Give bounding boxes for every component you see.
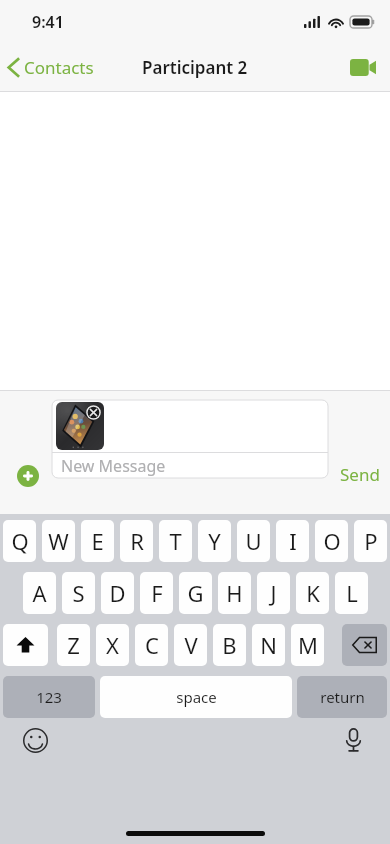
staticText: T [169,526,182,556]
button[interactable]: V [174,624,207,666]
button[interactable]: Backspace [342,624,387,666]
button[interactable]: E [81,520,114,562]
staticText: L [346,578,358,608]
button[interactable]: X [96,624,129,666]
staticText: D [109,578,126,608]
button[interactable]: A [23,572,56,614]
button[interactable]: Remove attachment [86,405,101,420]
button[interactable]: N [252,624,285,666]
staticText: space [176,687,217,707]
staticText: C [145,630,159,660]
button[interactable]: J [257,572,290,614]
button[interactable]: S [62,572,95,614]
staticText: Y [208,526,221,556]
button[interactable]: P [354,520,387,562]
staticText: M [298,630,318,660]
button[interactable]: B [213,624,246,666]
button[interactable]: Y [198,520,231,562]
staticText: R [130,526,144,556]
button[interactable]: R [120,520,153,562]
staticText: New Message [61,455,166,477]
staticText: Participant 2 [142,56,248,79]
staticText: F [151,578,163,608]
button[interactable]: D [101,572,134,614]
button[interactable]: W [42,520,75,562]
button[interactable]: M [291,624,324,666]
staticText: B [222,630,237,660]
button[interactable]: space [100,676,292,718]
button[interactable]: Send [330,457,390,492]
staticText: 9:41 [32,11,64,33]
staticText: O [323,526,341,556]
staticText: N [260,630,277,660]
staticText: H [226,578,243,608]
button[interactable]: G [179,572,212,614]
button[interactable]: U [237,520,270,562]
staticText: S [72,578,85,608]
staticText: U [245,526,262,556]
button[interactable]: Add attachment [17,465,39,487]
staticText: G [187,578,204,608]
staticText: P [364,526,378,556]
button[interactable]: L [335,572,368,614]
button[interactable]: C [135,624,168,666]
button[interactable]: Q [3,520,36,562]
staticText: J [270,578,277,608]
button[interactable]: H [218,572,251,614]
staticText: E [91,526,104,556]
staticText: A [32,578,47,608]
staticText: X [106,630,119,660]
staticText: V [184,630,198,660]
staticText: Contacts [24,56,94,79]
button[interactable]: O [315,520,348,562]
button[interactable]: Z [57,624,90,666]
button[interactable]: Contacts [0,50,102,85]
staticText: 123 [36,687,62,707]
button[interactable]: I [276,520,309,562]
button[interactable]: Shift [3,624,48,666]
button[interactable]: Video call [336,49,390,86]
button[interactable]: return [297,676,387,718]
button[interactable]: 123 [3,676,95,718]
button[interactable]: K [296,572,329,614]
staticText: W [48,526,69,556]
staticText: I [289,526,297,556]
button[interactable]: Dictation [338,725,368,755]
staticText: Send [340,463,380,486]
staticText: K [306,578,320,608]
button[interactable]: Emoji [20,725,50,755]
button[interactable]: T [159,520,192,562]
staticText: return [320,687,365,707]
staticText: Q [11,526,29,556]
button[interactable]: F [140,572,173,614]
staticText: Z [67,630,80,660]
